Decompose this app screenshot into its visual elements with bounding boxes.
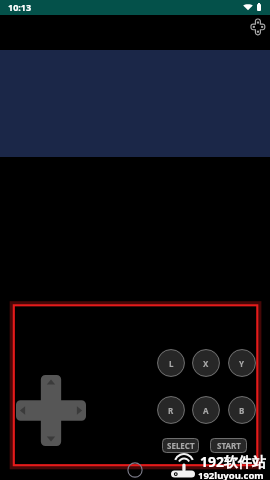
button[interactable]: X: [192, 349, 220, 377]
staticText: L: [169, 358, 174, 369]
staticText: START: [217, 440, 241, 451]
button[interactable]: R: [157, 396, 185, 424]
staticText: Y: [239, 358, 245, 369]
staticText: 10:13: [8, 1, 32, 13]
staticText: R: [168, 405, 174, 416]
button[interactable]: Home: [127, 462, 143, 478]
staticText: B: [239, 405, 245, 416]
button[interactable]: L: [157, 349, 185, 377]
staticText: 192luyou.com: [198, 469, 264, 480]
button[interactable]: SELECT: [162, 438, 199, 453]
button[interactable]: START: [210, 438, 247, 453]
staticText: 192软件站: [200, 452, 267, 471]
button[interactable]: Direction pad: [16, 375, 86, 446]
staticText: SELECT: [167, 440, 195, 451]
staticText: X: [203, 358, 209, 369]
button[interactable]: Y: [228, 349, 256, 377]
staticText: A: [203, 405, 209, 416]
button[interactable]: A: [192, 396, 220, 424]
button[interactable]: B: [228, 396, 256, 424]
button[interactable]: Game controls: [248, 16, 269, 38]
